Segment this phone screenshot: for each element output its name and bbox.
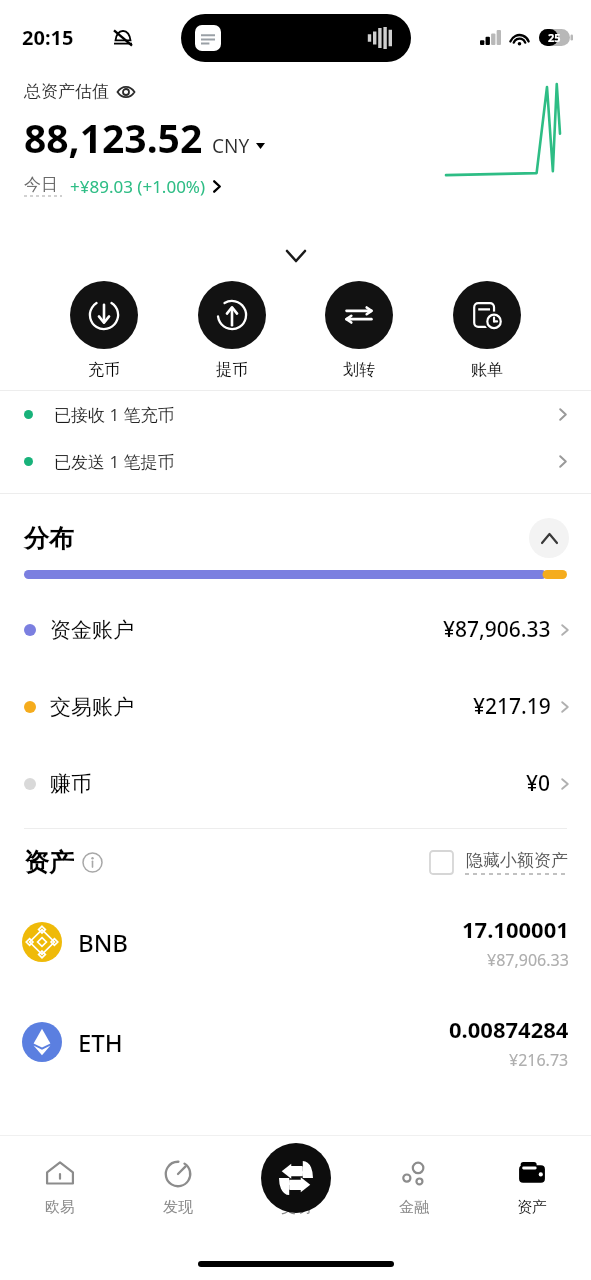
staticText: 赚币 <box>50 771 92 797</box>
staticText: 交易账户 <box>50 694 134 720</box>
button[interactable]: 账单 <box>449 281 525 380</box>
staticText: 欧易 <box>45 1198 75 1217</box>
button[interactable]: 已发送 1 笔提币 <box>0 438 591 485</box>
button[interactable]: BNB <box>0 892 591 992</box>
button[interactable]: 交易账户 <box>0 668 591 745</box>
button[interactable]: 充币 <box>66 281 142 380</box>
staticText: ¥87,906.33 <box>443 615 551 644</box>
button[interactable]: 说明 <box>82 852 103 873</box>
staticText: 88,123.52 <box>24 111 203 164</box>
staticText: 隐藏小额资产 <box>466 850 568 871</box>
staticText: 20:15 <box>22 24 74 51</box>
staticText: +¥89.03 (+1.00%) <box>70 175 206 198</box>
button[interactable]: 今日 <box>24 174 221 198</box>
staticText: BNB <box>78 926 129 959</box>
staticText: 今日 <box>24 174 58 195</box>
staticText: 金融 <box>399 1198 429 1217</box>
staticText: ¥217.19 <box>473 692 551 721</box>
button[interactable]: 发现 <box>119 1135 237 1239</box>
button[interactable]: 已接收 1 笔充币 <box>0 391 591 438</box>
staticText: 资金账户 <box>50 617 134 643</box>
staticText: ¥87,906.33 <box>487 949 569 971</box>
button[interactable]: ETH <box>0 992 591 1092</box>
staticText: 17.100001 <box>462 914 569 944</box>
button[interactable]: 收起 <box>529 518 569 558</box>
button[interactable]: 展开 <box>279 245 313 267</box>
button[interactable]: 交易 <box>261 1143 331 1213</box>
staticText: 账单 <box>471 360 503 380</box>
staticText: 发现 <box>163 1198 193 1217</box>
staticText: 已发送 1 笔提币 <box>54 450 175 473</box>
button[interactable]: 提币 <box>194 281 270 380</box>
button[interactable]: 欧易 <box>0 1135 119 1239</box>
staticText: 交易 <box>281 1198 311 1217</box>
button[interactable]: 隐藏小额资产 <box>430 850 569 875</box>
staticText: 已接收 1 笔充币 <box>54 403 175 426</box>
staticText: 总资产估值 <box>24 81 109 102</box>
staticText: 0.00874284 <box>449 1014 569 1044</box>
button[interactable]: 划转 <box>321 281 397 380</box>
button[interactable]: 资产 <box>473 1135 591 1239</box>
button[interactable]: 交易 <box>237 1135 355 1239</box>
button[interactable]: CNY <box>212 133 265 159</box>
staticText: 资产 <box>24 847 74 878</box>
staticText: 25 <box>548 30 561 45</box>
staticText: CNY <box>212 133 250 159</box>
staticText: 充币 <box>88 360 120 380</box>
staticText: ¥216.73 <box>509 1049 569 1071</box>
button[interactable]: 赚币 <box>0 745 591 822</box>
staticText: 划转 <box>343 360 375 380</box>
button[interactable]: 资金账户 <box>0 591 591 668</box>
button[interactable]: 隐藏余额 <box>116 82 136 102</box>
staticText: ETH <box>78 1026 123 1059</box>
button[interactable]: 金融 <box>355 1135 473 1239</box>
staticText: 资产 <box>517 1198 547 1217</box>
staticText: 分布 <box>24 523 74 554</box>
staticText: 提币 <box>216 360 248 380</box>
staticText: ¥0 <box>526 769 551 798</box>
